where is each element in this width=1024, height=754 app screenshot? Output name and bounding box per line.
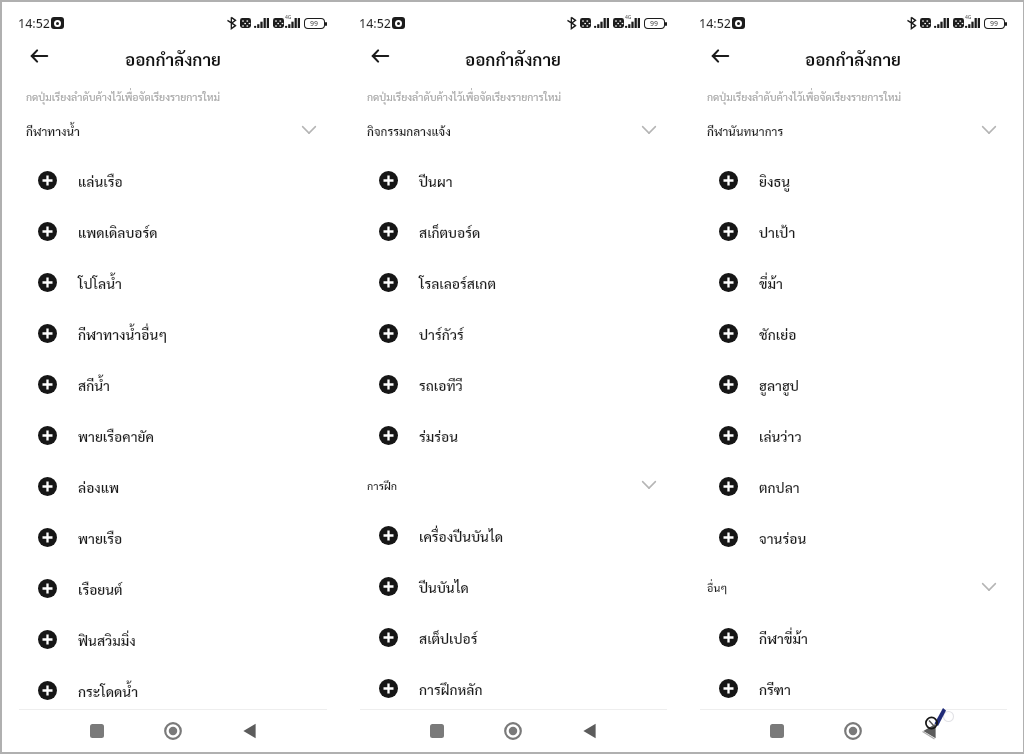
staticText: ปาเป้า xyxy=(759,223,796,241)
staticText: ออกกำลังกาย xyxy=(125,48,221,70)
button[interactable]: กิจกรรมกลางแจ้ง xyxy=(343,119,683,143)
staticText: 4G xyxy=(625,14,632,21)
button[interactable]: Recents xyxy=(77,713,117,749)
button[interactable]: จานร่อน xyxy=(683,512,1023,563)
staticText: สกีน้ำ xyxy=(78,376,110,394)
staticText: ฮูลาฮูป xyxy=(759,376,799,394)
button[interactable]: Back xyxy=(229,713,269,749)
button[interactable]: ปีนผา xyxy=(343,155,683,206)
staticText: พายเรือคายัค xyxy=(78,427,154,445)
button[interactable]: กีฬาทางน้ำ xyxy=(2,119,343,143)
staticText: การฝึกหลัก xyxy=(419,680,483,698)
staticText: แพดเดิลบอร์ด xyxy=(78,223,158,241)
button[interactable]: กีฬาขี่ม้า xyxy=(683,612,1023,663)
button[interactable]: โปโลน้ำ xyxy=(2,257,343,308)
button[interactable]: ขี่ม้า xyxy=(683,257,1023,308)
staticText: ฟินสวิมมิ่ง xyxy=(78,631,136,649)
staticText: ชักเย่อ xyxy=(759,325,797,343)
button[interactable]: ฟินสวิมมิ่ง xyxy=(2,614,343,665)
button[interactable]: ชักเย่อ xyxy=(683,308,1023,359)
staticText: โปโลน้ำ xyxy=(78,274,122,292)
staticText: กระโดดน้ำ xyxy=(78,682,139,700)
staticText: กีฬาทางน้ำ xyxy=(26,124,80,139)
staticText: 4G xyxy=(285,14,292,21)
button[interactable]: เล่นว่าว xyxy=(683,410,1023,461)
button[interactable]: พายเรือคายัค xyxy=(2,410,343,461)
button[interactable]: ตกปลา xyxy=(683,461,1023,512)
button[interactable]: Home xyxy=(493,713,533,749)
button[interactable]: Home xyxy=(153,713,193,749)
staticText: เรือยนต์ xyxy=(78,580,123,598)
staticText: ขี่ม้า xyxy=(759,274,783,292)
button[interactable]: การฝึกหลัก xyxy=(343,663,683,714)
staticText: 14:52 xyxy=(699,15,732,32)
staticText: ตกปลา xyxy=(759,478,800,496)
staticText: สเก็ตบอร์ด xyxy=(419,223,481,241)
button[interactable]: แล่นเรือ xyxy=(2,155,343,206)
staticText: กีฬานันทนาการ xyxy=(707,124,784,139)
staticText: อื่นๆ xyxy=(707,581,728,595)
button[interactable]: เครื่องปีนบันได xyxy=(343,510,683,561)
button[interactable]: ฮูลาฮูป xyxy=(683,359,1023,410)
button[interactable]: รถเอทีวี xyxy=(343,359,683,410)
staticText: ปาร์กัวร์ xyxy=(419,325,464,343)
button[interactable]: กระโดดน้ำ xyxy=(2,665,343,716)
staticText: ร่มร่อน xyxy=(419,427,459,445)
button[interactable]: Recents xyxy=(417,713,457,749)
staticText: ปีนผา xyxy=(419,172,453,190)
staticText: กีฬาขี่ม้า xyxy=(759,629,808,647)
button[interactable]: อื่นๆ xyxy=(683,577,1023,599)
staticText: 4G xyxy=(965,14,972,21)
button[interactable]: Home xyxy=(833,713,873,749)
button[interactable]: การฝึก xyxy=(343,475,683,497)
button[interactable]: สเต็ปเปอร์ xyxy=(343,612,683,663)
staticText: ออกกำลังกาย xyxy=(465,48,561,70)
staticText: เครื่องปีนบันได xyxy=(419,527,504,545)
staticText: จานร่อน xyxy=(759,529,807,547)
staticText: ออกกำลังกาย xyxy=(805,48,901,70)
button[interactable]: สเก็ตบอร์ด xyxy=(343,206,683,257)
button[interactable]: ล่องแพ xyxy=(2,461,343,512)
staticText: รถเอทีวี xyxy=(419,376,463,394)
button[interactable]: ปาเป้า xyxy=(683,206,1023,257)
button[interactable]: แพดเดิลบอร์ด xyxy=(2,206,343,257)
staticText: กรีฑา xyxy=(759,680,791,698)
staticText: พายเรือ xyxy=(78,529,123,547)
button[interactable]: Back xyxy=(569,713,609,749)
staticText: 99 xyxy=(990,19,999,28)
button[interactable]: Back xyxy=(704,40,736,72)
staticText: กดปุ่มเรียงลำดับค้างไว้เพื่อจัดเรียงรายก… xyxy=(367,90,561,104)
staticText: 14:52 xyxy=(359,15,392,32)
staticText: การฝึก xyxy=(367,479,398,493)
button[interactable]: พายเรือ xyxy=(2,512,343,563)
staticText: ล่องแพ xyxy=(78,478,120,496)
staticText: กิจกรรมกลางแจ้ง xyxy=(367,124,451,139)
button[interactable]: เรือยนต์ xyxy=(2,563,343,614)
button[interactable]: Back xyxy=(909,713,949,749)
staticText: กดปุ่มเรียงลำดับค้างไว้เพื่อจัดเรียงรายก… xyxy=(26,90,220,104)
button[interactable]: กีฬานันทนาการ xyxy=(683,119,1023,143)
staticText: กีฬาทางน้ำอื่นๆ xyxy=(78,325,168,343)
staticText: กดปุ่มเรียงลำดับค้างไว้เพื่อจัดเรียงรายก… xyxy=(707,90,901,104)
staticText: โรลเลอร์สเกต xyxy=(419,274,496,292)
staticText: แล่นเรือ xyxy=(78,172,123,190)
staticText: เล่นว่าว xyxy=(759,427,802,445)
button[interactable]: ยิงธนู xyxy=(683,155,1023,206)
staticText: ปีนบันได xyxy=(419,578,469,596)
button[interactable]: Recents xyxy=(757,713,797,749)
button[interactable]: โรลเลอร์สเกต xyxy=(343,257,683,308)
staticText: 99 xyxy=(650,19,659,28)
button[interactable]: Back xyxy=(23,40,55,72)
staticText: 14:52 xyxy=(18,15,51,32)
button[interactable]: สกีน้ำ xyxy=(2,359,343,410)
button[interactable]: ร่มร่อน xyxy=(343,410,683,461)
staticText: สเต็ปเปอร์ xyxy=(419,629,478,647)
staticText: ยิงธนู xyxy=(759,172,791,190)
staticText: 99 xyxy=(310,19,319,28)
button[interactable]: Back xyxy=(364,40,396,72)
button[interactable]: ปาร์กัวร์ xyxy=(343,308,683,359)
button[interactable]: ปีนบันได xyxy=(343,561,683,612)
button[interactable]: กรีฑา xyxy=(683,663,1023,714)
button[interactable]: กีฬาทางน้ำอื่นๆ xyxy=(2,308,343,359)
